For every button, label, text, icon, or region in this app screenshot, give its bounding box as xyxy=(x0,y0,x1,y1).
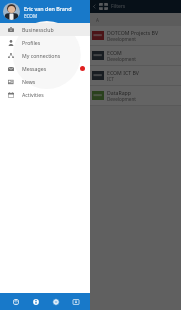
staticText: ECOM xyxy=(107,49,122,56)
staticText: Eric van den Brand xyxy=(24,5,72,12)
staticText: Profiles xyxy=(22,39,85,46)
staticText: DOTCOM Projects BV xyxy=(107,29,159,36)
staticText: Activities xyxy=(22,91,85,98)
staticText: Messages xyxy=(22,65,80,72)
staticText: Filters xyxy=(111,3,126,10)
staticText: Development xyxy=(107,96,136,102)
button[interactable]: Settings xyxy=(49,295,62,308)
button[interactable]: News xyxy=(0,75,90,88)
button[interactable]: ECOM xyxy=(0,46,181,65)
button[interactable]: Log out xyxy=(69,295,82,308)
button[interactable]: Eric van den Brand xyxy=(0,0,90,23)
staticText: ECOM xyxy=(24,13,38,19)
staticText: Development xyxy=(107,36,136,42)
button[interactable]: My connections xyxy=(0,49,90,62)
staticText: My connections xyxy=(22,52,85,59)
button[interactable]: Activities xyxy=(0,88,90,101)
button[interactable]: Info xyxy=(29,295,42,308)
button[interactable]: Profiles xyxy=(0,36,90,49)
button[interactable]: Messages xyxy=(0,62,90,75)
staticText: News xyxy=(22,78,85,85)
staticText: Businessclub xyxy=(22,26,85,33)
staticText: Development xyxy=(107,56,136,62)
staticText: DataRapp xyxy=(107,89,131,96)
button[interactable]: ECOM ICT BV xyxy=(0,66,181,85)
button[interactable]: Help xyxy=(9,295,22,308)
staticText: A xyxy=(96,17,99,23)
button[interactable]: Businessclub xyxy=(0,23,90,36)
staticText: ICT xyxy=(107,76,115,82)
button[interactable]: DataRapp xyxy=(0,86,181,105)
staticText: ECOM ICT BV xyxy=(107,69,139,76)
button[interactable]: DOTCOM Projects BV xyxy=(0,26,181,45)
